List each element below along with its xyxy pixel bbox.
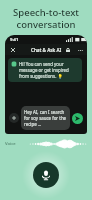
button[interactable]: Add attachment: [9, 113, 19, 123]
button[interactable]: Hi! You can send your message or get ins…: [8, 58, 82, 82]
button[interactable]: Microphone: [33, 162, 59, 188]
button[interactable]: Send: [72, 113, 83, 124]
staticText: Chat & Ask AI: [31, 47, 62, 53]
staticText: 9:41: [10, 37, 19, 43]
button[interactable]: Privacy: [64, 46, 72, 54]
staticText: Hey AI, can I search for soy sauce for t…: [24, 109, 67, 127]
button[interactable]: More options: [76, 46, 84, 54]
staticText: Voice: [5, 141, 16, 147]
staticText: Speech-to-text conversation: [3, 6, 89, 31]
staticText: Hi! You can send your message or get ins…: [19, 61, 79, 79]
button[interactable]: Close: [8, 45, 17, 54]
button[interactable]: Hey AI, can I search for soy sauce for t…: [21, 106, 70, 130]
